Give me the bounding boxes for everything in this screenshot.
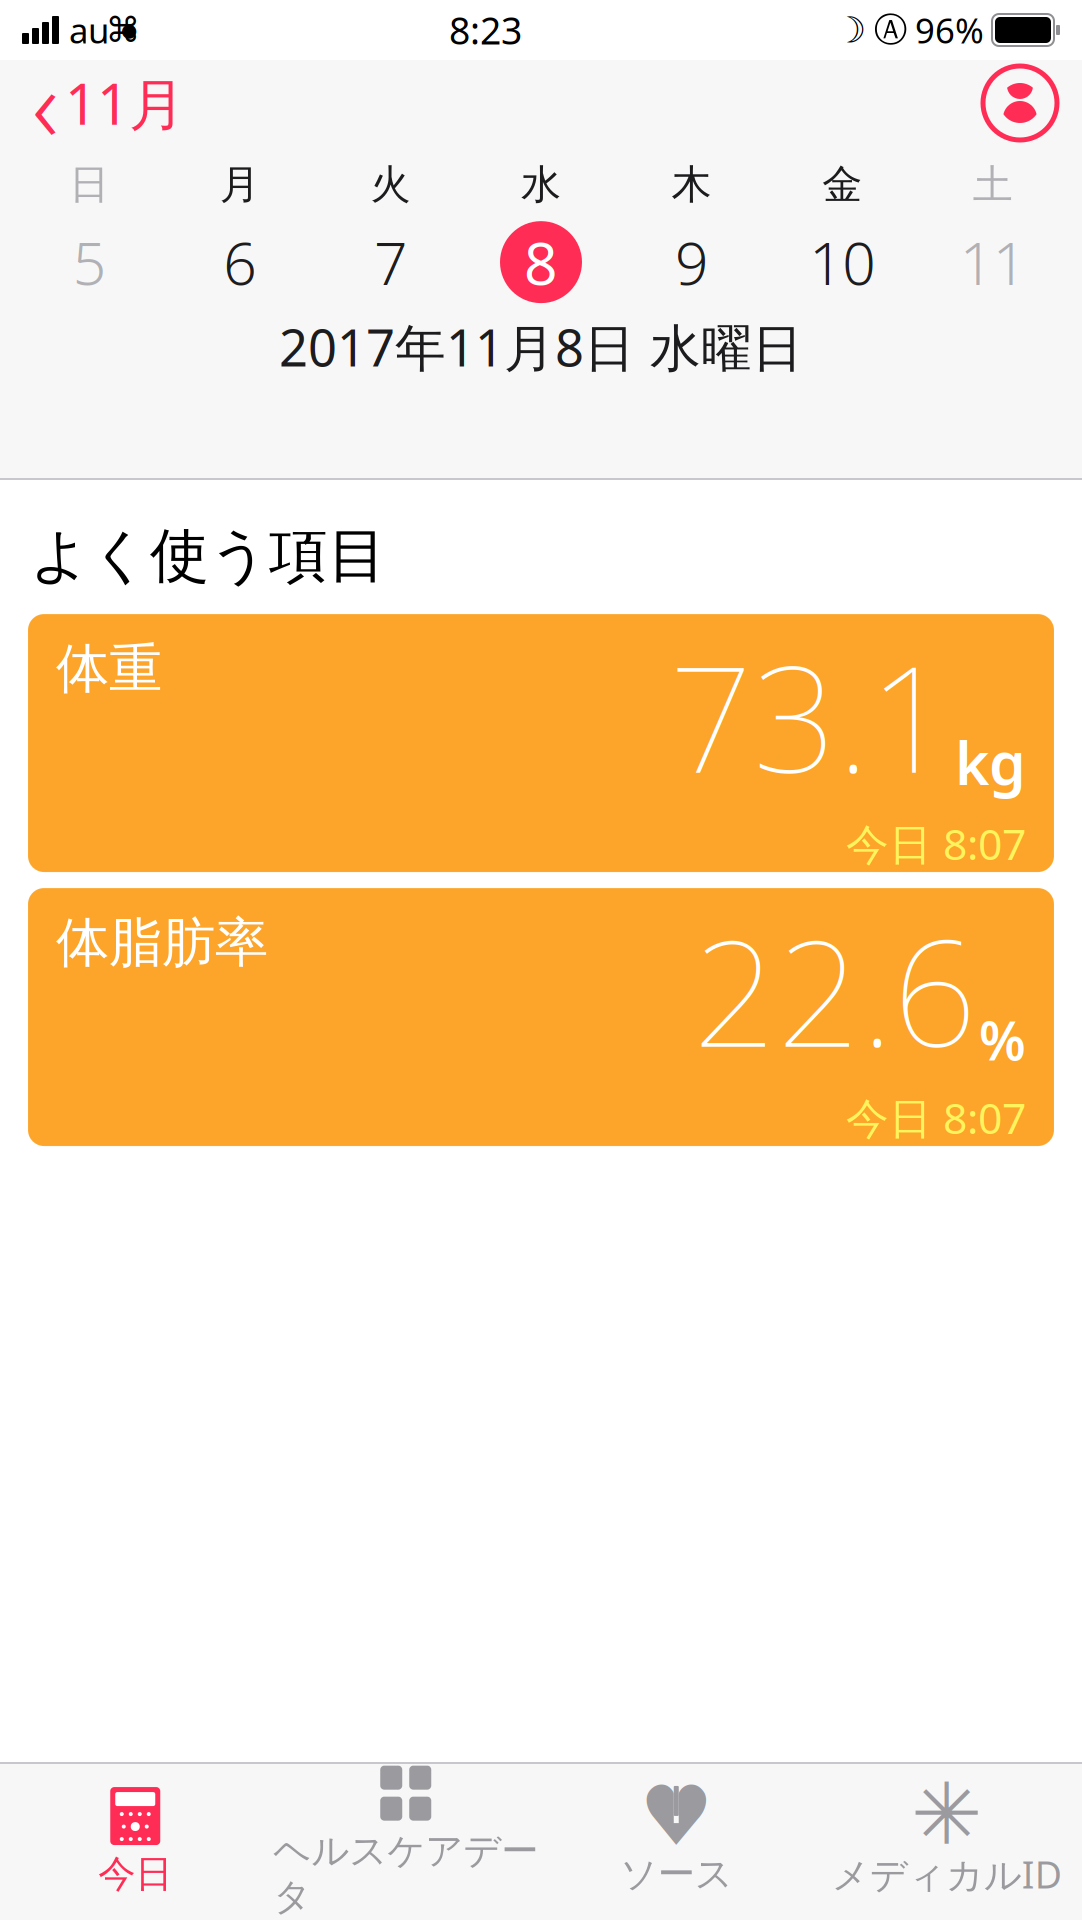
staticText: よく使う項目 bbox=[30, 520, 387, 592]
staticText: 96% bbox=[915, 7, 984, 53]
staticText: ♥ bbox=[639, 1769, 713, 1863]
button[interactable]: ♥ bbox=[541, 1777, 811, 1907]
button[interactable]: 10 bbox=[767, 217, 917, 307]
staticText: 体脂肪率 bbox=[56, 910, 268, 976]
staticText: ☽ bbox=[834, 10, 866, 50]
staticText: Ⓐ bbox=[874, 9, 907, 50]
staticText: 8:23 bbox=[449, 5, 522, 55]
staticText: ヘルスケアデータ bbox=[273, 1828, 538, 1920]
button[interactable]: 8 bbox=[466, 217, 616, 307]
staticText: 11 bbox=[960, 223, 1026, 301]
staticText: 日 bbox=[69, 160, 109, 209]
button[interactable]: ヘルスケアデータ bbox=[270, 1754, 541, 1920]
staticText: 6 bbox=[223, 223, 256, 301]
button[interactable]: ✳ bbox=[811, 1775, 1082, 1909]
staticText: 2017年11月8日 水曜日 bbox=[279, 313, 803, 380]
staticText: 火 bbox=[370, 160, 410, 209]
staticText: 9 bbox=[675, 223, 708, 301]
staticText: % bbox=[979, 1004, 1026, 1075]
staticText: kg bbox=[955, 723, 1026, 801]
button[interactable]: 6 bbox=[165, 217, 315, 307]
staticText: 水 bbox=[521, 160, 561, 209]
staticText: 11月 bbox=[65, 66, 185, 140]
staticText: au bbox=[69, 7, 109, 53]
button[interactable]: 体脂肪率 bbox=[28, 888, 1054, 1146]
staticText: 金 bbox=[822, 160, 862, 209]
staticText: ▼ bbox=[666, 1816, 687, 1846]
staticText: 8 bbox=[524, 223, 558, 301]
staticText: 今日 bbox=[98, 1851, 172, 1897]
staticText: 月 bbox=[220, 160, 260, 209]
staticText: 今日 8:07 bbox=[846, 1089, 1026, 1146]
button[interactable]: 体重 bbox=[28, 614, 1054, 872]
staticText: 木 bbox=[672, 160, 712, 209]
staticText: 10 bbox=[809, 223, 875, 301]
button[interactable]: ‹ bbox=[22, 32, 195, 174]
staticText: ‹ bbox=[32, 36, 59, 170]
staticText: 22.6 bbox=[693, 892, 977, 1087]
staticText: 今日 8:07 bbox=[846, 815, 1026, 872]
staticText: ✳ bbox=[911, 1766, 983, 1863]
staticText: 5 bbox=[73, 223, 106, 301]
button[interactable]: プロフィール bbox=[980, 63, 1060, 143]
staticText: メディカルID bbox=[832, 1849, 1062, 1899]
staticText: 土 bbox=[973, 160, 1013, 209]
staticText: 体重 bbox=[56, 636, 162, 702]
button[interactable]: 5 bbox=[14, 217, 165, 307]
staticText: ● bbox=[121, 19, 137, 41]
button[interactable]: 7 bbox=[315, 217, 466, 307]
button[interactable]: 9 bbox=[616, 217, 767, 307]
staticText: ⌘ bbox=[105, 10, 140, 50]
button[interactable]: 11 bbox=[917, 217, 1068, 307]
button[interactable]: 今日 bbox=[0, 1777, 270, 1907]
staticText: 73.1 bbox=[669, 618, 953, 813]
staticText: ソース bbox=[620, 1851, 733, 1897]
staticText: 7 bbox=[374, 223, 407, 301]
